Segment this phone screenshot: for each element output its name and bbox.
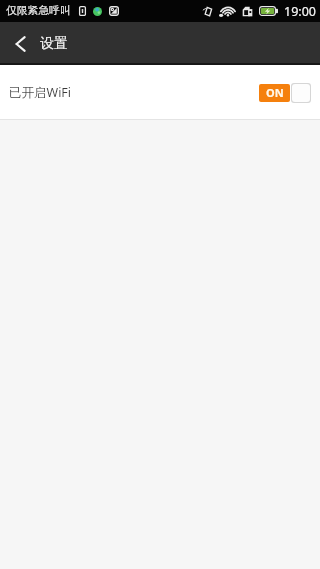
staticText: 已开启WiFi	[9, 84, 72, 101]
staticText: 19:00	[284, 3, 316, 20]
button[interactable]: Back	[0, 22, 40, 65]
staticText: 设置	[40, 35, 68, 53]
button[interactable]: WiFi on/off	[259, 82, 311, 103]
staticText: ON	[266, 85, 284, 100]
staticText: 仅限紧急呼叫	[6, 4, 71, 18]
button[interactable]: 已开启WiFi	[0, 65, 320, 119]
